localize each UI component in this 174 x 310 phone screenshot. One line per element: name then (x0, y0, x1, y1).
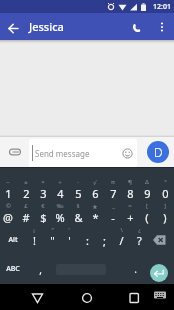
button[interactable]: ; (96, 232, 112, 248)
button[interactable] (150, 264, 168, 282)
button[interactable] (150, 232, 168, 248)
staticText: / (119, 233, 124, 248)
button[interactable] (28, 287, 48, 307)
staticText: ; (103, 233, 106, 248)
staticText: § (76, 202, 80, 210)
staticText: 1 (5, 186, 12, 201)
staticText: 4 (57, 186, 64, 201)
staticText: 8 (127, 186, 134, 201)
staticText: . (134, 262, 137, 276)
button[interactable]: # (18, 209, 34, 225)
staticText: * (92, 210, 99, 225)
staticText: - (111, 210, 115, 225)
button[interactable]: 2 (18, 185, 34, 201)
staticText: % (55, 210, 65, 225)
staticText: × (41, 178, 45, 186)
button[interactable]: " (44, 232, 60, 248)
button[interactable]: , (32, 262, 48, 278)
staticText: ' (68, 233, 71, 248)
staticText: + (127, 210, 134, 225)
button[interactable]: @ (0, 209, 16, 225)
button[interactable]: ? (131, 232, 147, 248)
button[interactable]: ABC (3, 261, 23, 277)
button[interactable]: ! (26, 232, 42, 248)
button[interactable] (152, 288, 168, 302)
staticText: ★ (92, 203, 98, 210)
staticText: 6 (92, 186, 99, 201)
button[interactable] (122, 148, 133, 159)
button[interactable]: . (127, 261, 143, 277)
staticText: # (22, 210, 30, 225)
staticText: , (39, 263, 42, 277)
button[interactable]: 6 (87, 185, 103, 201)
button[interactable]: - (105, 209, 121, 225)
button[interactable]: 7 (105, 185, 121, 201)
staticText: ? (137, 233, 142, 248)
button[interactable] (124, 287, 144, 307)
staticText: π (111, 178, 115, 186)
button[interactable]: 5 (70, 185, 86, 201)
button[interactable]: & (70, 209, 86, 225)
button[interactable] (77, 287, 97, 307)
staticText: 3 (40, 186, 47, 201)
button[interactable]: 8 (122, 185, 138, 201)
staticText: ÷ (58, 178, 62, 186)
button[interactable]: 4 (52, 185, 68, 201)
button[interactable]: D (147, 141, 169, 163)
staticText: ( (145, 210, 149, 225)
staticText: ! (33, 233, 36, 248)
staticText: 7 (110, 186, 117, 201)
staticText: ° (164, 178, 167, 186)
staticText: Alt (8, 235, 18, 245)
staticText: 2 (23, 186, 30, 201)
button[interactable]: Send message (29, 139, 137, 167)
staticText: 5 (75, 186, 82, 201)
button[interactable] (154, 19, 170, 35)
staticText: ‘ (68, 226, 70, 234)
button[interactable]: + (122, 209, 138, 225)
button[interactable] (8, 145, 22, 159)
button[interactable]: 0 (157, 185, 173, 201)
button[interactable]: 3 (35, 185, 51, 201)
button[interactable]: 9 (139, 185, 155, 201)
button[interactable]: 1 (0, 185, 16, 201)
button[interactable]: ' (61, 232, 77, 248)
staticText: ¡ (33, 226, 35, 234)
button[interactable]: % (52, 209, 68, 225)
staticText: √ (93, 179, 97, 186)
staticText: $ (40, 210, 47, 225)
button[interactable]: * (87, 209, 103, 225)
button[interactable]: Alt (3, 232, 23, 248)
staticText: ABC (6, 264, 20, 274)
staticText: _ (112, 202, 115, 210)
staticText: 12:01 (153, 2, 171, 12)
button[interactable]: ( (139, 209, 155, 225)
button[interactable] (130, 19, 146, 35)
button[interactable]: : (79, 232, 95, 248)
staticText: ¿ (138, 226, 141, 234)
staticText: ) (163, 210, 167, 225)
staticText: Send message (35, 148, 90, 159)
staticText: & (74, 210, 83, 225)
staticText: = (128, 202, 132, 210)
staticText: [ (146, 202, 148, 210)
staticText: € (41, 202, 45, 210)
staticText: 9 (144, 186, 151, 201)
button[interactable]: $ (35, 209, 51, 225)
staticText: D (154, 144, 163, 160)
button[interactable]: / (113, 232, 129, 248)
staticText: £ (24, 202, 28, 210)
staticText: 0 (162, 186, 169, 201)
staticText: ¶ (128, 178, 132, 186)
staticText: @ (3, 210, 13, 225)
staticText: ‰ (56, 202, 64, 210)
staticText: Jessica (29, 19, 64, 34)
button[interactable]: ) (157, 209, 173, 225)
staticText: ~ (6, 178, 10, 186)
staticText: ± (24, 178, 28, 186)
button[interactable] (0, 15, 24, 39)
staticText: · (77, 178, 79, 186)
staticText: © (6, 202, 11, 210)
staticText: : (86, 233, 89, 248)
